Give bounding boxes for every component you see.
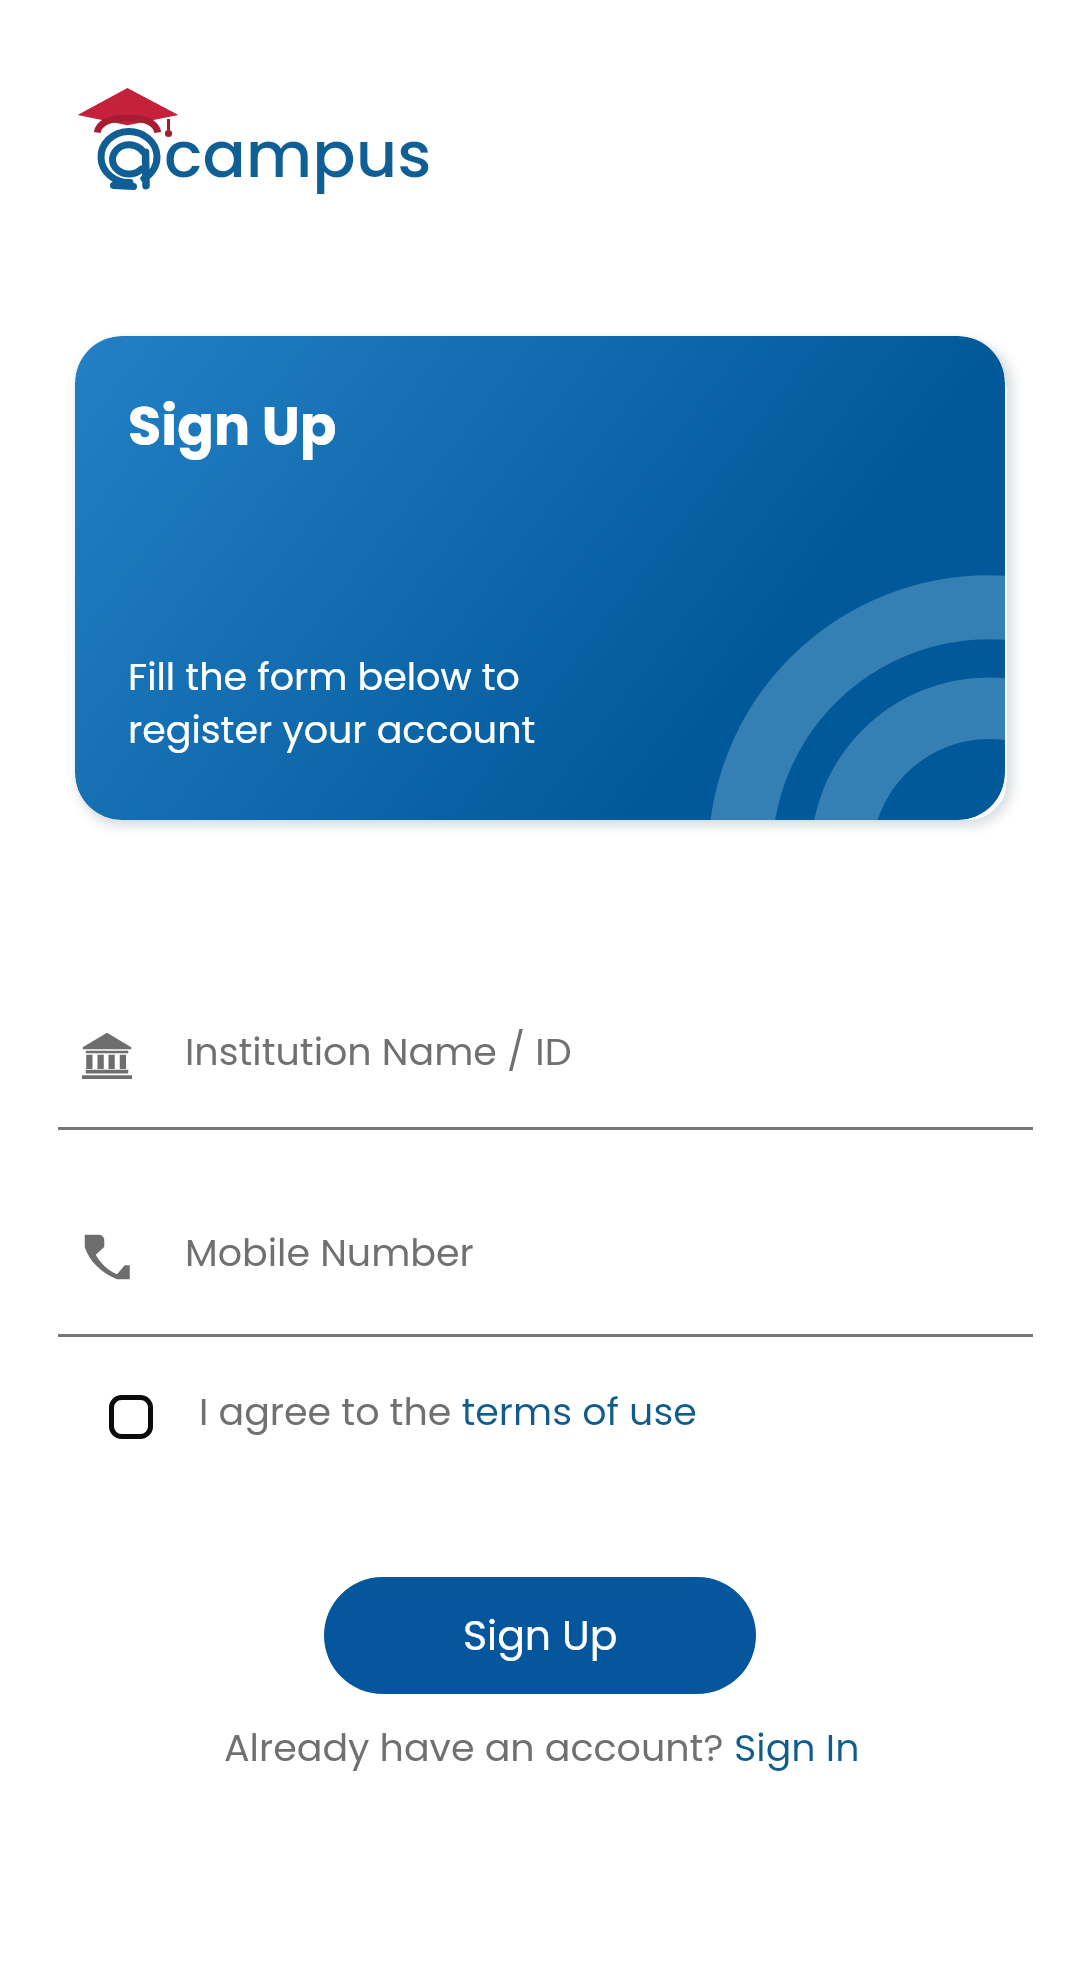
button[interactable]: Mobile number <box>0 1207 1065 1307</box>
staticText: campus <box>164 110 432 200</box>
button[interactable]: Sign Up <box>324 1577 756 1694</box>
staticText: Already have an account? <box>224 1721 734 1774</box>
staticText: Sign Up <box>128 388 337 464</box>
staticText: I agree to the terms of use <box>199 1385 697 1438</box>
other: Mobile number <box>82 1232 132 1282</box>
staticText: Sign Up <box>463 1607 618 1664</box>
button[interactable]: Institution <box>0 1004 1065 1104</box>
other: Institution <box>82 1029 132 1079</box>
button[interactable]: I agree to the terms of use <box>104 1377 697 1445</box>
staticText: Institution Name / ID <box>185 1025 572 1078</box>
staticText: Fill the form below to register your acc… <box>128 650 536 756</box>
staticText: Mobile Number <box>185 1226 474 1279</box>
button[interactable]: Sign In <box>734 1721 860 1774</box>
